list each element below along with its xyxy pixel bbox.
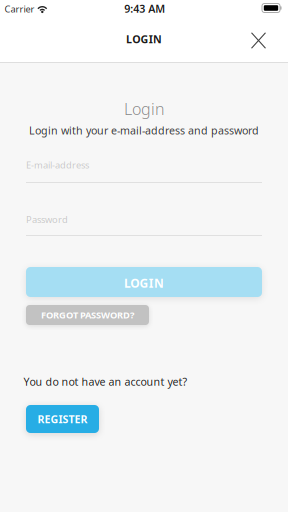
staticText: Login with your e-mail-address and passw… [29,123,259,137]
button[interactable]: E-mail-address [26,158,262,184]
staticText: You do not have an account yet? [24,374,188,389]
button[interactable]: LOGIN [26,267,262,297]
staticText: LOGIN [126,32,162,46]
button[interactable]: REGISTER [26,405,99,433]
staticText: LOGIN [124,275,164,291]
staticText: Password [26,213,68,226]
staticText: REGISTER [37,412,87,426]
button[interactable]: FORGOT PASSWORD? [26,305,149,325]
button[interactable]: Password [26,212,262,238]
staticText: Carrier [4,3,34,15]
staticText: Login [124,98,165,119]
button[interactable] [240,22,276,58]
staticText: FORGOT PASSWORD? [41,309,134,321]
staticText: E-mail-address [26,159,89,171]
staticText: 9:43 AM [124,2,165,16]
